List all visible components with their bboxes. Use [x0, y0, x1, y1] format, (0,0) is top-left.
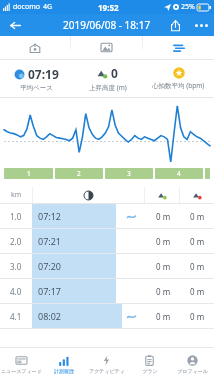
staticText: 19:52 — [98, 2, 119, 13]
staticText: 07:12 — [38, 210, 62, 222]
staticText: 4 — [177, 169, 181, 178]
button[interactable]: Photos — [71, 36, 142, 59]
staticText: 平均ペース — [20, 84, 53, 92]
button[interactable]: 計測履歴 — [42, 348, 85, 380]
staticText: 2019/06/08 - 18:17 — [63, 18, 151, 32]
staticText: 3 — [127, 169, 131, 178]
button[interactable]: 07:19 — [0, 60, 72, 97]
button[interactable]: 1.0 — [0, 204, 214, 228]
button[interactable]: Back — [0, 14, 30, 36]
button[interactable]: More options — [188, 14, 214, 36]
button[interactable]: ニュースフィード — [0, 348, 42, 380]
button[interactable]: Share — [162, 14, 188, 36]
button[interactable]: 0 — [72, 60, 143, 97]
button[interactable]: 4.1 — [0, 304, 214, 328]
staticText: 0 m — [156, 261, 171, 272]
button[interactable]: Chart — [143, 36, 214, 59]
staticText: ニュースフィード — [1, 368, 42, 374]
staticText: km — [11, 190, 22, 200]
staticText: プロフィール — [177, 368, 208, 374]
staticText: 0 m — [156, 286, 171, 297]
staticText: 0 — [111, 65, 118, 81]
staticText: 07:21 — [38, 235, 62, 247]
staticText: 07:19 — [28, 66, 59, 82]
staticText: 0 m — [156, 236, 171, 247]
staticText: プラン — [142, 368, 158, 374]
staticText: 0 m — [190, 236, 205, 247]
button[interactable]: 3.0 — [0, 254, 214, 278]
button[interactable]: プロフィール — [171, 348, 214, 380]
staticText: 0 m — [156, 211, 171, 222]
staticText: 3.0 — [10, 261, 22, 272]
button[interactable]: 2.0 — [0, 229, 214, 253]
staticText: 07:17 — [38, 285, 62, 297]
staticText: 上昇高度 (m) — [89, 83, 127, 92]
staticText: 25% — [181, 2, 195, 12]
staticText: 1 — [27, 169, 31, 178]
staticText: 4G — [43, 2, 53, 12]
staticText: 4.0 — [10, 286, 22, 297]
button[interactable]: Map — [0, 36, 70, 59]
staticText: 0 m — [156, 311, 171, 322]
staticText: 07:20 — [38, 260, 62, 272]
staticText: アクティビティ — [89, 368, 125, 374]
staticText: 0 m — [190, 261, 205, 272]
staticText: 0 m — [190, 211, 205, 222]
button[interactable]: 4.0 — [0, 279, 214, 303]
staticText: 4.1 — [10, 311, 22, 322]
staticText: 2 — [77, 169, 81, 178]
staticText: 0 m — [190, 286, 205, 297]
staticText: 1.0 — [10, 211, 22, 222]
staticText: 0 m — [190, 311, 205, 322]
staticText: 心拍数平均 (bpm) — [152, 81, 205, 90]
staticText: 08:02 — [38, 310, 62, 322]
button[interactable]: プラン — [128, 348, 171, 380]
button[interactable]: 心拍数平均 (bpm) — [143, 60, 214, 97]
staticText: 2.0 — [10, 236, 22, 247]
button[interactable]: アクティビティ — [85, 348, 128, 380]
staticText: docomo — [13, 2, 40, 12]
staticText: 計測履歴 — [54, 368, 74, 374]
